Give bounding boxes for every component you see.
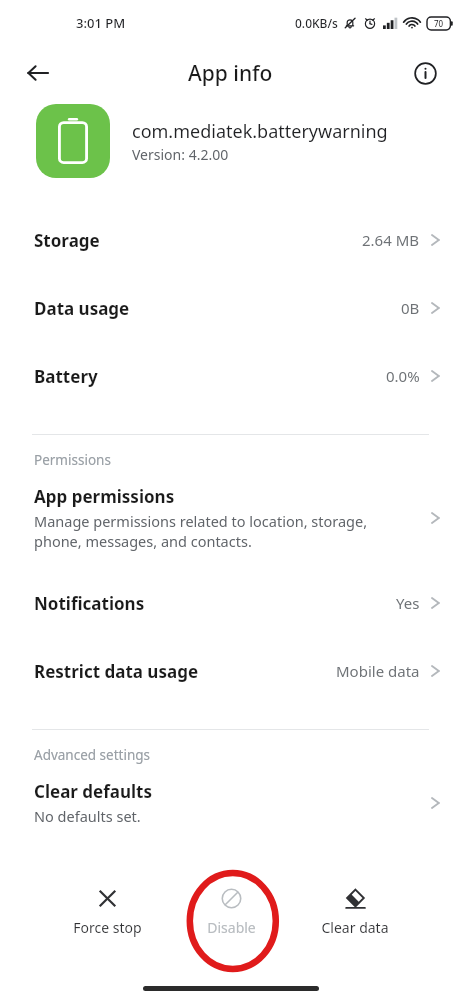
- staticText: App info: [188, 59, 273, 88]
- staticText: Storage: [34, 229, 362, 252]
- staticText: Force stop: [73, 918, 142, 937]
- button[interactable]: Clear defaults: [0, 772, 461, 834]
- staticText: Yes: [396, 593, 420, 613]
- staticText: App permissions: [34, 485, 175, 508]
- staticText: 70: [434, 18, 444, 29]
- button[interactable]: Storage: [0, 206, 461, 274]
- staticText: Advanced settings: [34, 746, 151, 764]
- staticText: Manage permissions related to location, …: [34, 511, 368, 551]
- button[interactable]: Notifications: [0, 569, 461, 637]
- staticText: 3:01 PM: [76, 14, 126, 32]
- staticText: Clear defaults: [34, 780, 153, 803]
- staticText: Disable: [207, 918, 256, 937]
- staticText: 0.0KB/s: [295, 15, 338, 31]
- staticText: 2.64 MB: [362, 230, 420, 250]
- staticText: Battery: [34, 365, 386, 388]
- button[interactable]: Clear data: [309, 881, 401, 941]
- button[interactable]: Back: [14, 49, 62, 97]
- button[interactable]: Data usage: [0, 274, 461, 342]
- button[interactable]: Restrict data usage: [0, 637, 461, 705]
- staticText: Restrict data usage: [34, 660, 336, 683]
- staticText: Permissions: [34, 451, 111, 469]
- button[interactable]: App permissions: [0, 477, 461, 559]
- staticText: No defaults set.: [34, 806, 141, 826]
- button[interactable]: Battery: [0, 342, 461, 410]
- button: Disable: [185, 881, 277, 941]
- staticText: Version: 4.2.00: [132, 145, 229, 164]
- staticText: 0.0%: [386, 366, 420, 386]
- staticText: Notifications: [34, 592, 396, 615]
- staticText: Mobile data: [336, 661, 420, 681]
- staticText: Clear data: [321, 918, 389, 937]
- staticText: com.mediatek.batterywarning: [132, 119, 388, 144]
- staticText: 0B: [401, 298, 420, 318]
- button[interactable]: About: [401, 49, 449, 97]
- staticText: Data usage: [34, 297, 401, 320]
- button[interactable]: Force stop: [61, 881, 153, 941]
